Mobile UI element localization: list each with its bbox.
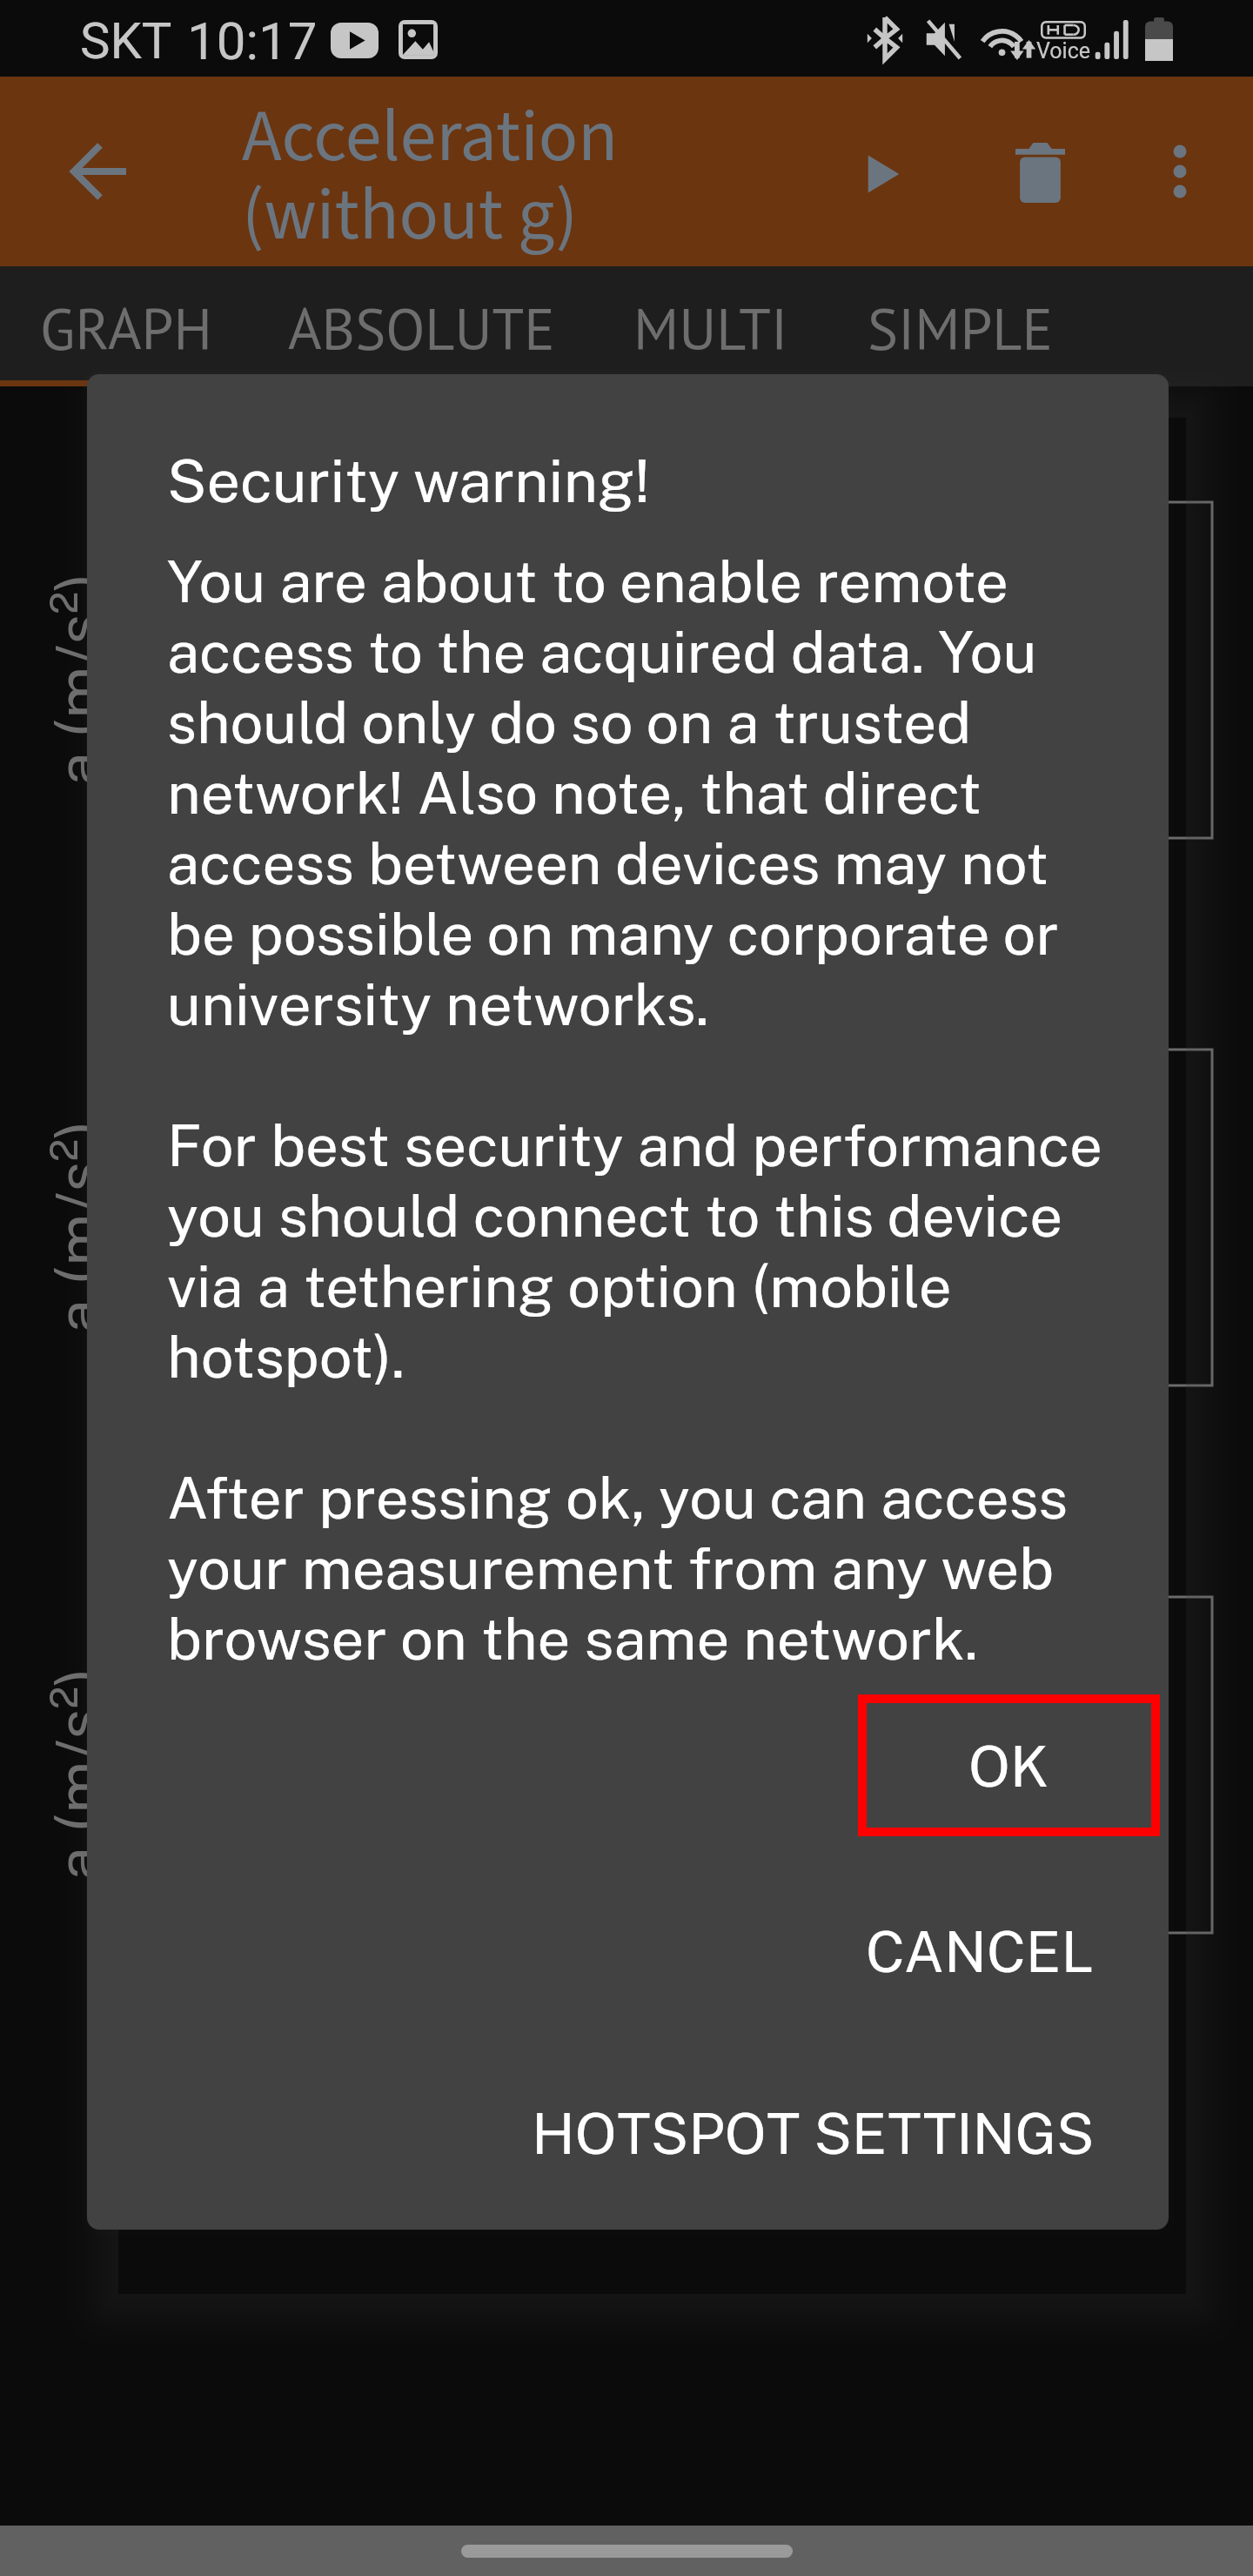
- staticText: Acceleration (without g): [242, 85, 851, 267]
- staticText: a (m/s²): [42, 1120, 113, 1333]
- staticText: a (m/s²): [42, 1667, 113, 1881]
- button[interactable]: SIMPLE: [868, 291, 1053, 365]
- staticText: a (m/s²): [42, 573, 113, 786]
- button[interactable]: OK: [858, 1694, 1160, 1836]
- staticText: HOTSPOT SETTINGS: [532, 2100, 1095, 2166]
- button[interactable]: HOTSPOT SETTINGS: [449, 2090, 1095, 2177]
- staticText: ABSOLUTE: [288, 291, 555, 365]
- staticText: SKT: [80, 11, 172, 70]
- staticText: OK: [968, 1733, 1049, 1799]
- button[interactable]: ABSOLUTE: [288, 291, 555, 365]
- button[interactable]: CANCEL: [784, 1908, 1095, 1995]
- button[interactable]: GRAPH: [40, 291, 212, 365]
- button[interactable]: MULTI: [633, 291, 788, 365]
- staticText: SIMPLE: [868, 291, 1053, 365]
- staticText: You are about to enable remote access to…: [167, 547, 1111, 1673]
- staticText: Voice: [1036, 38, 1091, 64]
- button[interactable]: Back: [48, 119, 152, 224]
- staticText: Security warning!: [167, 446, 650, 515]
- button[interactable]: Delete: [1015, 143, 1065, 203]
- staticText: GRAPH: [40, 291, 212, 365]
- staticText: MULTI: [633, 291, 788, 365]
- staticText: 10:17: [187, 10, 318, 71]
- button[interactable]: More options: [1136, 135, 1223, 208]
- button[interactable]: Start: [842, 122, 926, 226]
- staticText: CANCEL: [866, 1918, 1095, 1984]
